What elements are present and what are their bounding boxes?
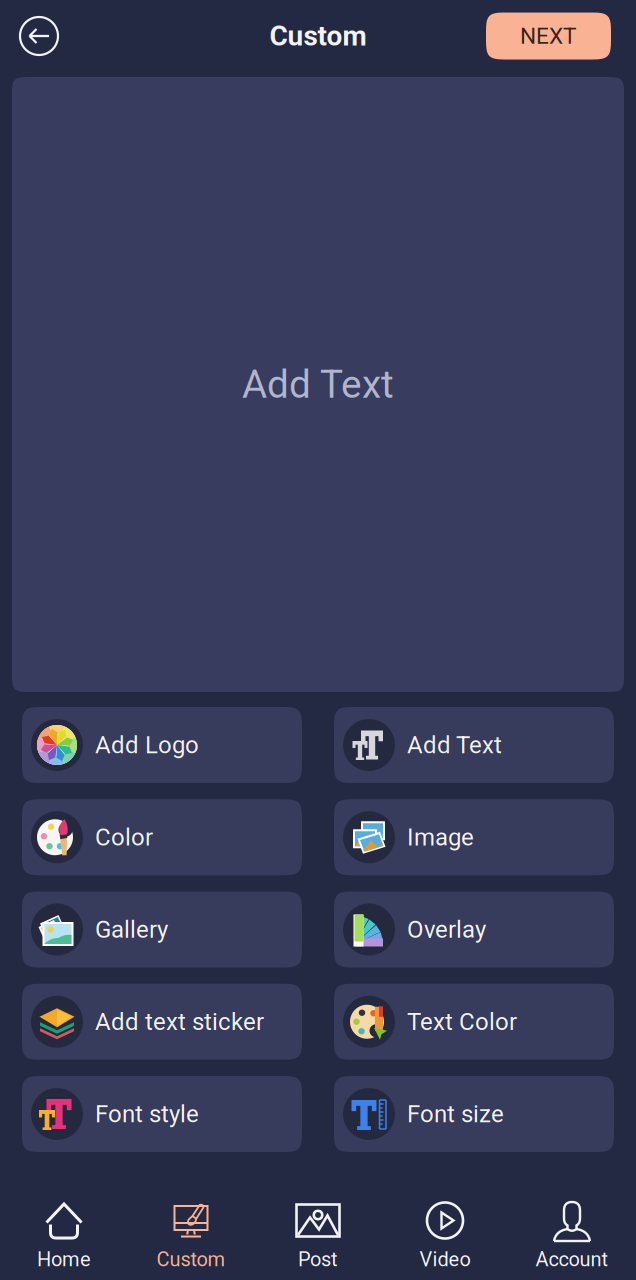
- staticText: Image: [407, 823, 474, 851]
- staticText: Post: [298, 1248, 338, 1271]
- staticText: Custom: [156, 1248, 225, 1271]
- staticText: Add Logo: [95, 731, 199, 759]
- staticText: Font style: [95, 1100, 199, 1128]
- button[interactable]: Add text sticker: [22, 984, 302, 1060]
- button[interactable]: Account: [508, 1180, 635, 1280]
- button[interactable]: Video: [381, 1180, 508, 1280]
- staticText: Color: [95, 823, 153, 851]
- button[interactable]: Post: [254, 1180, 381, 1280]
- button[interactable]: Overlay: [334, 891, 614, 967]
- button[interactable]: Color: [22, 799, 302, 875]
- button[interactable]: Text Color: [334, 984, 614, 1060]
- button[interactable]: NEXT: [486, 12, 611, 59]
- staticText: Font size: [407, 1100, 504, 1128]
- button[interactable]: Font style: [22, 1076, 302, 1152]
- staticText: Add Text: [407, 731, 502, 759]
- staticText: Account: [535, 1248, 608, 1271]
- staticText: Text Color: [407, 1008, 517, 1036]
- button[interactable]: Add Logo: [22, 707, 302, 783]
- button[interactable]: Font size: [334, 1076, 614, 1152]
- button[interactable]: Image: [334, 799, 614, 875]
- button[interactable]: Custom: [127, 1180, 254, 1280]
- staticText: Add text sticker: [95, 1008, 264, 1036]
- staticText: Add Text: [242, 362, 394, 407]
- staticText: Gallery: [95, 915, 168, 943]
- staticText: Home: [37, 1248, 91, 1271]
- button[interactable]: Add Text: [334, 707, 614, 783]
- staticText: Custom: [269, 20, 366, 52]
- staticText: Video: [419, 1248, 470, 1271]
- button[interactable]: Back: [13, 10, 65, 62]
- button[interactable]: Home: [0, 1180, 127, 1280]
- staticText: Overlay: [407, 915, 486, 943]
- button[interactable]: Gallery: [22, 891, 302, 967]
- staticText: NEXT: [520, 23, 577, 49]
